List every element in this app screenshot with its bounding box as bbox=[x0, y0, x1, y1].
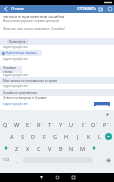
staticText: support.google.com bbox=[3, 84, 28, 88]
button[interactable]: B bbox=[55, 142, 66, 154]
button[interactable]: Q bbox=[0, 118, 11, 130]
button[interactable]: S bbox=[17, 130, 28, 142]
staticText: Посмотреть bbox=[9, 40, 26, 44]
staticText: support.google.com bbox=[3, 45, 28, 49]
button[interactable]: Посмотреть bbox=[0, 38, 114, 45]
button[interactable]: Keyboard settings bbox=[106, 113, 109, 116]
button[interactable]: Shift bbox=[0, 142, 11, 154]
button[interactable]: C bbox=[33, 142, 44, 154]
staticText: 8 bbox=[85, 121, 87, 124]
button[interactable]: W bbox=[11, 118, 22, 130]
button[interactable]: Мои записи не отправились в сервис bbox=[0, 77, 114, 84]
button[interactable]: Back bbox=[0, 5, 11, 13]
button[interactable]: R bbox=[33, 118, 44, 130]
button[interactable]: Attach screenshot bbox=[97, 5, 105, 13]
button[interactable]: O bbox=[88, 118, 99, 130]
button[interactable]: P bbox=[99, 118, 110, 130]
button[interactable]: I bbox=[77, 118, 88, 130]
button[interactable]: Change language bbox=[103, 154, 114, 166]
staticText: W bbox=[14, 121, 20, 128]
button[interactable]: Похожие статьи bbox=[0, 66, 22, 73]
staticText: 6 bbox=[63, 121, 65, 124]
button[interactable]: U bbox=[66, 118, 77, 130]
button[interactable]: K bbox=[83, 130, 94, 142]
staticText: G bbox=[53, 133, 58, 140]
button[interactable]: Отправить bbox=[94, 102, 110, 106]
button[interactable]: , bbox=[13, 154, 22, 166]
staticText: support.google.com bbox=[3, 102, 28, 106]
staticText: Похожие статьи bbox=[3, 66, 22, 73]
staticText: ОТПРАВИТЬ bbox=[77, 7, 96, 11]
button[interactable]: Y bbox=[55, 118, 66, 130]
staticText: Нужна ваша помощь bbox=[6, 51, 37, 55]
staticText: Ваш отзыв улучшит сервис для всех bbox=[3, 19, 60, 23]
staticText: 0 bbox=[107, 121, 109, 124]
button[interactable]: A bbox=[6, 130, 17, 142]
staticText: O bbox=[91, 121, 96, 128]
button[interactable]: Ошибка в приложении bbox=[0, 89, 114, 96]
staticText: 9 bbox=[96, 121, 98, 124]
staticText: 1 bbox=[8, 121, 10, 124]
button[interactable]: Нужна ваша помощь bbox=[0, 50, 42, 56]
staticText: Отзыв bbox=[11, 6, 24, 12]
button[interactable]: Z bbox=[11, 142, 22, 154]
button[interactable]: J bbox=[72, 130, 83, 142]
staticText: I bbox=[82, 121, 84, 128]
staticText: Мои записи не отправились в сервис bbox=[3, 79, 58, 83]
staticText: support.google.com bbox=[3, 57, 28, 61]
button[interactable]: E bbox=[22, 118, 33, 130]
button[interactable]: Home bbox=[49, 173, 65, 182]
staticText: Ответы на вопросы в Справке bbox=[3, 96, 47, 100]
button[interactable]: Help bbox=[105, 5, 114, 13]
staticText: Q bbox=[3, 121, 8, 128]
button[interactable]: ?123 bbox=[0, 154, 13, 166]
staticText: M bbox=[80, 145, 85, 152]
staticText: F bbox=[43, 133, 46, 140]
button[interactable]: L bbox=[94, 130, 105, 142]
staticText: записи в приложении ошибка bbox=[3, 14, 65, 20]
staticText: B bbox=[59, 145, 63, 152]
staticText: U bbox=[69, 121, 74, 128]
staticText: 5 bbox=[52, 121, 54, 124]
staticText: 7 bbox=[74, 121, 76, 124]
button[interactable]: ОТПРАВИТЬ bbox=[76, 7, 97, 11]
button[interactable]: X bbox=[22, 142, 33, 154]
button[interactable]: M bbox=[77, 142, 88, 154]
button[interactable]: Back bbox=[33, 173, 49, 182]
staticText: A bbox=[10, 133, 14, 140]
staticText: X bbox=[26, 145, 30, 152]
button[interactable]: D bbox=[28, 130, 39, 142]
staticText: support.google.com bbox=[3, 73, 28, 77]
staticText: J bbox=[77, 133, 79, 140]
button[interactable]: V bbox=[44, 142, 55, 154]
staticText: V bbox=[48, 145, 52, 152]
staticText: C bbox=[37, 145, 41, 152]
staticText: R bbox=[37, 121, 41, 128]
button[interactable]: H bbox=[61, 130, 72, 142]
button[interactable]: F bbox=[39, 130, 50, 142]
staticText: P bbox=[103, 121, 107, 128]
button[interactable]: Recents bbox=[65, 173, 81, 182]
staticText: , bbox=[17, 158, 19, 163]
staticText: Y bbox=[59, 121, 63, 128]
staticText: K bbox=[87, 133, 91, 140]
staticText: 3 bbox=[30, 121, 32, 124]
staticText: Этим вы нам очень поможете. Спасибо! bbox=[3, 27, 65, 31]
staticText: Отправить bbox=[96, 103, 109, 106]
button[interactable]: Backspace bbox=[88, 142, 99, 154]
staticText: L bbox=[98, 133, 101, 140]
button[interactable]: Enter bbox=[105, 133, 112, 140]
staticText: Z bbox=[15, 145, 19, 152]
staticText: T bbox=[48, 121, 52, 128]
staticText: 2 bbox=[19, 121, 21, 124]
staticText: . bbox=[98, 158, 100, 163]
button[interactable]: T bbox=[44, 118, 55, 130]
button[interactable]: G bbox=[50, 130, 61, 142]
staticText: ?123 bbox=[3, 158, 10, 162]
staticText: S bbox=[21, 133, 25, 140]
staticText: 4 bbox=[41, 121, 43, 124]
button[interactable]: N bbox=[66, 142, 77, 154]
staticText: N bbox=[69, 145, 74, 152]
